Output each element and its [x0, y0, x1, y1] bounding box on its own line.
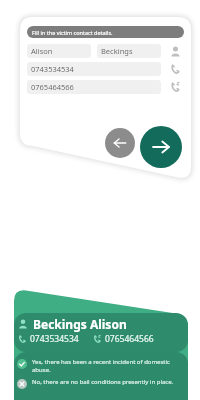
staticText: 0743534534: [31, 64, 74, 74]
button[interactable]: Back: [105, 128, 135, 158]
button[interactable]: Beckings: [97, 44, 161, 58]
staticText: Beckings: [101, 46, 133, 56]
button[interactable]: Call alternate: [168, 80, 182, 94]
button[interactable]: Call mobile: [168, 62, 182, 76]
button[interactable]: Next: [140, 126, 182, 168]
button[interactable]: No, there are no bail conditions present…: [16, 378, 186, 389]
staticText: 0765464566: [31, 82, 74, 92]
staticText: No, there are no bail conditions present…: [32, 378, 174, 386]
button[interactable]: 0743534534: [27, 62, 161, 76]
button[interactable]: Alison: [27, 44, 91, 58]
staticText: 0765464566: [105, 333, 154, 345]
button[interactable]: Yes, there has been a recent incident of…: [16, 358, 186, 374]
button[interactable]: 0765464566: [27, 80, 161, 94]
staticText: Fill in the victim contact details.: [32, 29, 113, 36]
staticText: 0743534534: [30, 333, 79, 345]
button[interactable]: 0743534534: [18, 333, 184, 345]
button[interactable]: Fill in the victim contact details.: [27, 26, 184, 38]
staticText: Beckings Alison: [33, 316, 127, 332]
staticText: Yes, there has been a recent incident of…: [32, 358, 186, 374]
staticText: Alison: [31, 46, 53, 56]
button[interactable]: Beckings Alison: [18, 316, 184, 332]
button[interactable]: Contact: [168, 44, 182, 58]
